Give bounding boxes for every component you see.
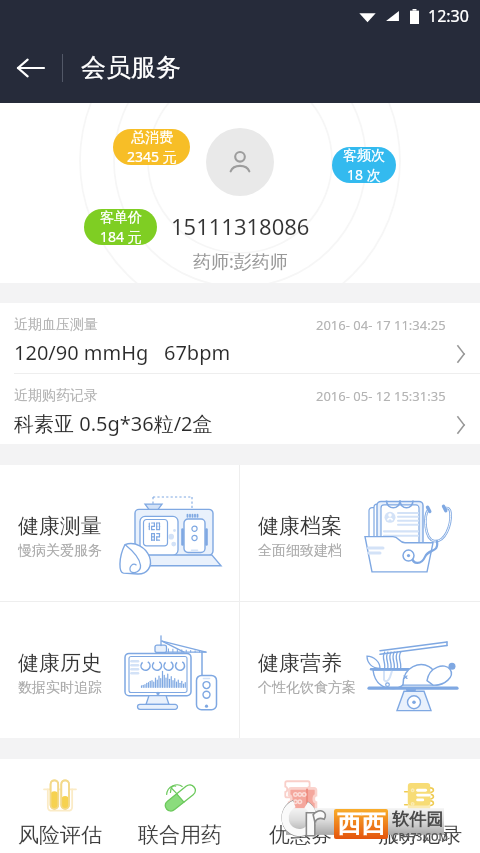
staticText: 120/90 mmHg 67bpm (14, 339, 231, 366)
staticText: 软件园 (392, 809, 443, 830)
staticText: 全面细致建档 (258, 542, 342, 560)
staticText: 2016- 05- 12 15:31:35 (316, 387, 446, 405)
button[interactable]: 健康档案 (240, 465, 480, 601)
button[interactable]: 服务记录 (360, 759, 480, 853)
staticText: 健康档案 (258, 513, 342, 539)
button[interactable]: 健康营养 (240, 602, 480, 738)
button[interactable]: 优惠券 (240, 759, 360, 853)
button[interactable]: 健康历史 (0, 602, 239, 738)
staticText: CR173.COM (392, 830, 449, 844)
staticText: 184 元 (100, 227, 142, 245)
staticText: 优惠券 (269, 822, 332, 848)
button[interactable]: 风险评估 (0, 759, 120, 853)
staticText: 科素亚 0.5g*36粒/2盒 (14, 410, 213, 437)
staticText: 近期购药记录 (14, 387, 98, 405)
staticText: 12:30 (428, 5, 469, 27)
staticText: 会员服务 (81, 52, 181, 83)
button[interactable]: 近期血压测量 (0, 303, 480, 373)
staticText: 15111318086 (171, 211, 310, 241)
button[interactable]: 近期购药记录 (0, 374, 480, 444)
button[interactable]: 客单价 (84, 209, 157, 245)
staticText: 服务记录 (378, 822, 462, 848)
staticText: 18 次 (347, 165, 381, 183)
staticText: 慢病关爱服务 (18, 542, 102, 560)
staticText: 个性化饮食方案 (258, 679, 356, 697)
staticText: 2345 元 (127, 147, 177, 165)
staticText: 近期血压测量 (14, 316, 98, 334)
staticText: 客单价 (100, 209, 142, 227)
staticText: 客频次 (343, 147, 385, 165)
staticText: 总消费 (131, 129, 173, 147)
staticText: 健康营养 (258, 650, 342, 676)
staticText: 联合用药 (138, 822, 222, 848)
button[interactable]: Back (0, 32, 62, 103)
button[interactable]: 联合用药 (120, 759, 240, 853)
staticText: 健康测量 (18, 513, 102, 539)
button[interactable]: 健康测量 (0, 465, 239, 601)
button[interactable]: 客频次 (332, 147, 396, 183)
staticText: 2016- 04- 17 11:34:25 (316, 316, 446, 334)
staticText: 风险评估 (18, 822, 102, 848)
staticText: 健康历史 (18, 650, 102, 676)
staticText: 药师:彭药师 (193, 249, 288, 274)
staticText: 西西 (337, 809, 385, 839)
staticText: 数据实时追踪 (18, 679, 102, 697)
button[interactable]: 总消费 (113, 129, 190, 165)
